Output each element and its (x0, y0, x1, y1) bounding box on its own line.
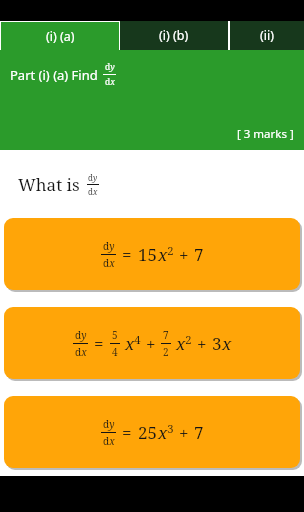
staticText: dy (103, 239, 115, 253)
staticText: x2 (158, 243, 174, 266)
staticText: 7 (194, 243, 204, 266)
staticText: Part (i) (a) Find (10, 66, 98, 84)
staticText: 25 (138, 421, 158, 444)
button[interactable]: (ii) (230, 21, 304, 50)
staticText: 4 (112, 345, 118, 359)
staticText: 3 (212, 332, 222, 355)
staticText: 2 (163, 345, 169, 359)
staticText: What is (18, 173, 80, 196)
staticText: 7 (194, 421, 204, 444)
staticText: [ 3 marks ] (237, 126, 294, 142)
button[interactable]: dy (4, 396, 300, 468)
staticText: (ii) (260, 27, 274, 44)
staticText: = (122, 421, 132, 444)
staticText: = (122, 243, 132, 266)
staticText: dy (103, 417, 115, 431)
staticText: + (197, 332, 207, 355)
staticText: (i) (b) (159, 27, 189, 44)
staticText: dy (88, 172, 98, 183)
staticText: x2 (176, 332, 192, 355)
staticText: dy (105, 61, 115, 73)
staticText: + (179, 243, 189, 266)
staticText: 15 (138, 243, 158, 266)
staticText: + (146, 332, 156, 355)
staticText: 7 (163, 328, 169, 342)
staticText: dx (75, 345, 87, 359)
staticText: dx (105, 76, 115, 88)
button[interactable]: (i) (b) (120, 21, 228, 50)
staticText: x (222, 332, 232, 355)
staticText: dx (88, 186, 98, 197)
button[interactable]: dy (4, 218, 300, 290)
staticText: (i) (a) (46, 28, 75, 45)
staticText: x3 (158, 421, 174, 444)
staticText: dx (103, 256, 115, 270)
staticText: x4 (125, 332, 141, 355)
staticText: + (179, 421, 189, 444)
staticText: dx (103, 434, 115, 448)
staticText: = (94, 332, 104, 355)
staticText: 5 (112, 328, 118, 342)
button[interactable]: (i) (a) (1, 22, 119, 50)
staticText: dy (75, 328, 87, 342)
button[interactable]: dy (4, 307, 300, 379)
